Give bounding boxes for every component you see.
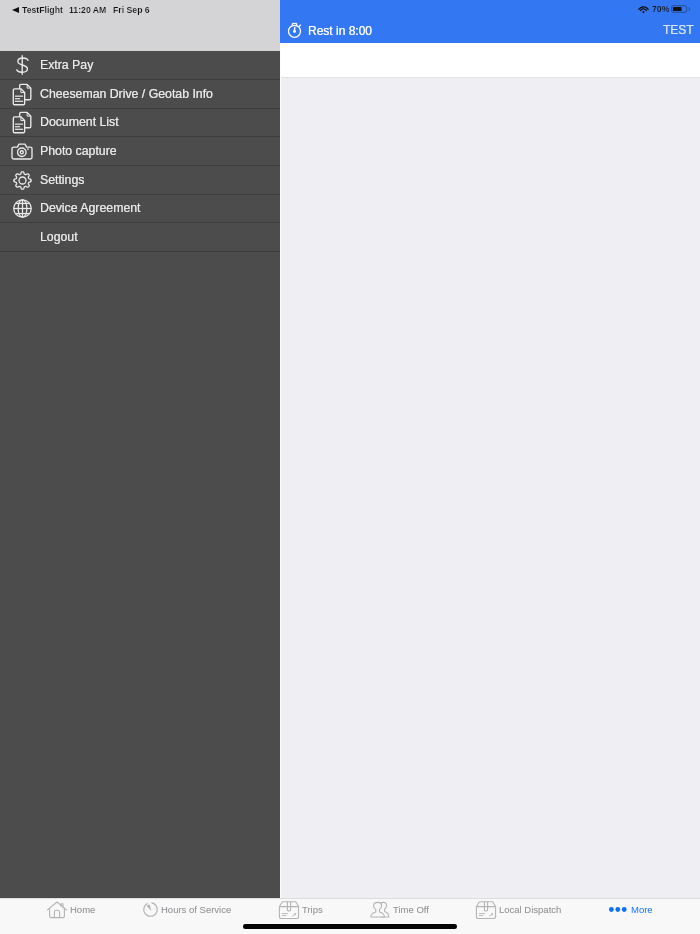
button[interactable]: Rest in 8:00 (287, 22, 373, 38)
button[interactable]: Photo capture (0, 137, 280, 166)
staticText: Device Agreement (40, 201, 141, 215)
staticText: Logout (40, 230, 78, 244)
button[interactable]: Home (47, 898, 96, 921)
button[interactable]: Settings (0, 166, 280, 195)
staticText: Rest in 8:00 (308, 24, 373, 37)
staticText: Cheeseman Drive / Geotab Info (40, 87, 213, 101)
staticText: Photo capture (40, 144, 117, 158)
staticText: Trips (302, 904, 323, 915)
staticText: Document List (40, 115, 119, 129)
staticText: TEST (663, 23, 694, 36)
button[interactable]: TEST (663, 23, 694, 36)
button[interactable]: Cheeseman Drive / Geotab Info (0, 80, 280, 109)
staticText: Home (70, 904, 96, 915)
staticText: 11:20 AM (69, 5, 107, 15)
staticText: More (631, 904, 653, 915)
staticText: TestFlight (22, 5, 63, 15)
button[interactable]: Logout (0, 223, 280, 252)
button[interactable]: Device Agreement (0, 194, 280, 223)
staticText: Extra Pay (40, 58, 94, 72)
staticText: Settings (40, 173, 85, 187)
button[interactable]: Trips (279, 898, 323, 921)
button[interactable]: More (609, 898, 653, 921)
button[interactable]: Document List (0, 108, 280, 137)
button[interactable]: Local Dispatch (476, 898, 562, 921)
staticText: Time Off (393, 904, 429, 915)
button[interactable]: Extra Pay (0, 51, 280, 80)
button[interactable]: Hours of Service (143, 898, 232, 921)
staticText: 70% (652, 4, 670, 14)
staticText: Fri Sep 6 (113, 5, 150, 15)
staticText: Hours of Service (161, 904, 232, 915)
staticText: Local Dispatch (499, 904, 562, 915)
button[interactable]: Time Off (370, 898, 429, 921)
